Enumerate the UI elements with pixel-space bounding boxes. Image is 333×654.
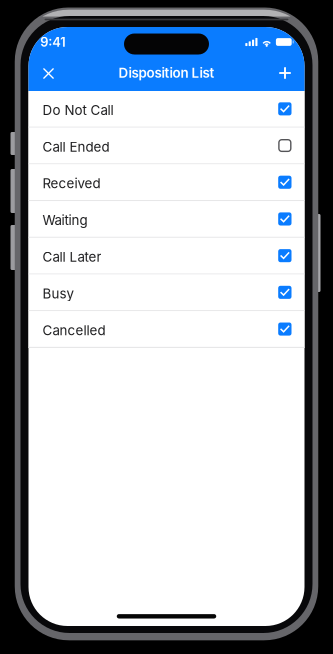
button[interactable]: Do Not Call xyxy=(28,91,304,128)
button[interactable]: Received xyxy=(28,164,304,201)
staticText: Waiting xyxy=(42,212,87,228)
button[interactable]: Waiting xyxy=(28,201,304,238)
staticText: Cancelled xyxy=(42,322,105,338)
button[interactable]: Call Later xyxy=(28,238,304,274)
button[interactable]: Call Ended xyxy=(28,128,304,164)
staticText: Busy xyxy=(42,285,73,302)
button[interactable]: Close xyxy=(28,58,67,87)
staticText: Disposition List xyxy=(118,65,214,81)
staticText: Do Not Call xyxy=(42,102,113,118)
button[interactable]: Busy xyxy=(28,274,304,311)
staticText: Received xyxy=(42,175,100,191)
button[interactable]: Cancelled xyxy=(28,311,304,348)
staticText: Call Later xyxy=(42,249,101,265)
staticText: 9:41 xyxy=(40,34,65,50)
button[interactable]: Add xyxy=(266,58,304,87)
staticText: Call Ended xyxy=(42,139,109,155)
